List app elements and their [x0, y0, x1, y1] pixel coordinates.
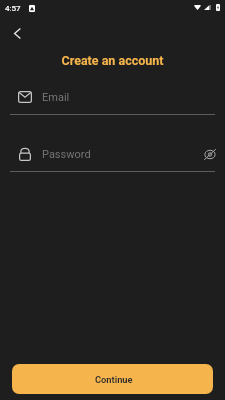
- button[interactable]: Back: [3, 19, 31, 47]
- button[interactable]: Password: [10, 143, 215, 167]
- staticText: 4:57: [5, 4, 21, 13]
- staticText: Email: [42, 91, 70, 104]
- button[interactable]: Show password: [202, 146, 218, 162]
- staticText: Create an account: [0, 53, 225, 68]
- button[interactable]: Email: [10, 86, 215, 110]
- staticText: Password: [42, 148, 91, 161]
- button[interactable]: Continue: [12, 364, 213, 394]
- staticText: Continue: [95, 374, 133, 385]
